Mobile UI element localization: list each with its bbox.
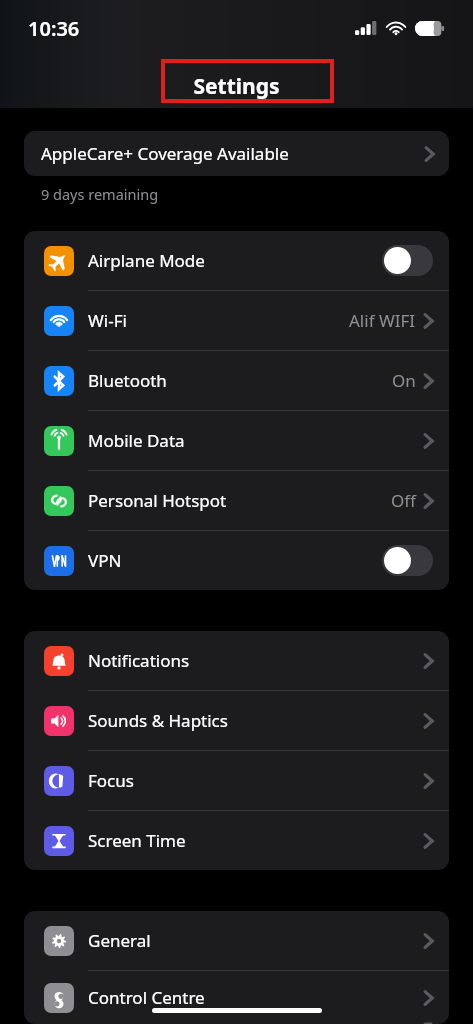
button[interactable]: Airplane Mode: [24, 231, 449, 290]
staticText: On: [392, 369, 416, 392]
button[interactable]: Bluetooth: [24, 351, 449, 410]
button[interactable]: VPN: [24, 531, 449, 590]
staticText: Mobile Data: [88, 429, 185, 452]
button[interactable]: Screen Time: [24, 811, 449, 870]
staticText: 10:36: [28, 15, 80, 42]
staticText: VPN: [88, 549, 122, 572]
button[interactable]: Wi-Fi: [24, 291, 449, 350]
button[interactable]: Control Centre: [24, 971, 449, 1024]
staticText: AppleCare+ Coverage Available: [41, 142, 289, 165]
staticText: Focus: [88, 769, 134, 792]
staticText: Bluetooth: [88, 369, 167, 392]
button[interactable]: Sounds & Haptics: [24, 691, 449, 750]
button[interactable]: Personal Hotspot: [24, 471, 449, 530]
staticText: Airplane Mode: [88, 249, 205, 272]
button[interactable]: AppleCare+ Coverage Available: [24, 131, 449, 176]
staticText: General: [88, 929, 151, 952]
button[interactable]: Notifications: [24, 631, 449, 690]
staticText: Settings: [193, 72, 280, 101]
button[interactable]: Airplane Mode toggle, off: [382, 245, 433, 276]
staticText: Screen Time: [88, 829, 186, 852]
staticText: Off: [391, 489, 416, 512]
staticText: Control Centre: [88, 986, 205, 1009]
button[interactable]: General: [24, 911, 449, 970]
staticText: Sounds & Haptics: [88, 709, 228, 732]
button[interactable]: Mobile Data: [24, 411, 449, 470]
staticText: Notifications: [88, 649, 190, 672]
button[interactable]: Focus: [24, 751, 449, 810]
staticText: Wi-Fi: [88, 309, 127, 332]
staticText: Alif WIFI: [349, 309, 416, 332]
staticText: 9 days remaining: [41, 184, 159, 204]
button[interactable]: VPN toggle, off: [382, 545, 433, 576]
staticText: Personal Hotspot: [88, 489, 227, 512]
